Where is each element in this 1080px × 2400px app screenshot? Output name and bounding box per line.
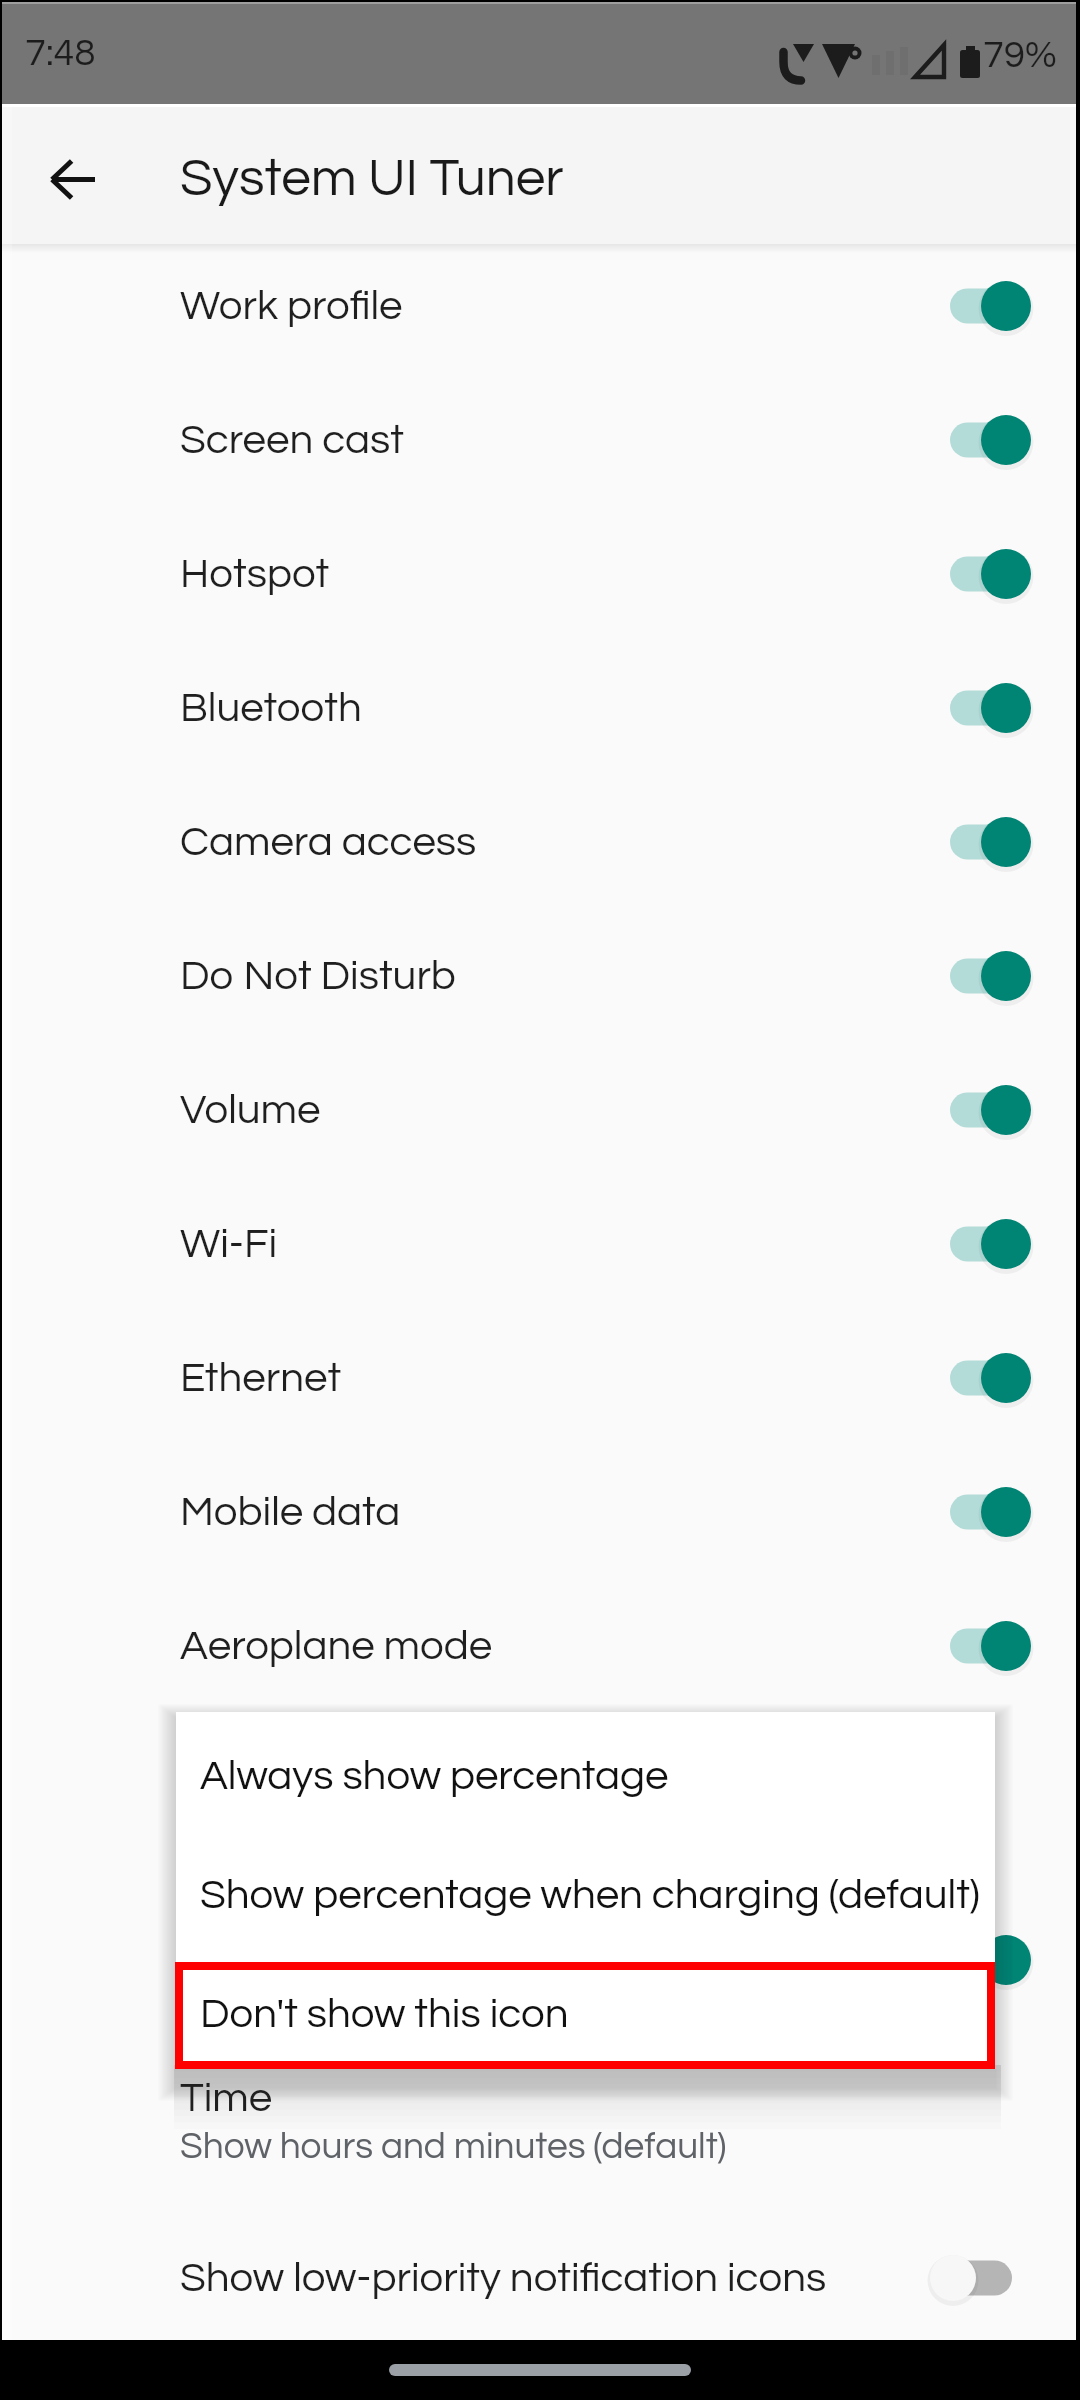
button[interactable]: Toggle Show low-priority notification ic… [946,2250,1034,2306]
button[interactable]: Back [26,133,118,225]
staticText: System UI Tuner [180,152,564,207]
button[interactable]: Screen cast [0,373,1080,507]
button[interactable]: Show low-priority notification icons [0,2211,1080,2345]
button[interactable]: Toggle Do Not Disturb [946,948,1034,1004]
button[interactable]: Time [0,2062,1080,2186]
staticText: Do Not Disturb [180,955,946,998]
staticText: Hotspot [180,553,946,596]
staticText: Wi-Fi [180,1223,946,1266]
staticText: 7:48 [25,34,96,73]
button[interactable]: Toggle Ethernet [946,1350,1034,1406]
staticText: Mobile data [180,1491,946,1534]
button[interactable]: Wi-Fi [0,1177,1080,1311]
staticText: Bluetooth [180,687,946,730]
staticText: 79% [983,36,1057,75]
button[interactable]: Mobile data [0,1445,1080,1579]
button[interactable]: Toggle Battery percentage [946,1932,1034,1988]
button[interactable]: Work profile [0,239,1080,373]
staticText: Don't show this icon [200,1993,569,2036]
button[interactable]: Don't show this icon [176,1950,995,2069]
button[interactable]: Toggle Volume [946,1082,1034,1138]
staticText: Show percentage when charging (default) [200,1874,980,1917]
staticText: Time [180,2077,273,2120]
staticText: Always show percentage [200,1755,669,1798]
button[interactable]: Bluetooth [0,641,1080,775]
button[interactable]: Camera access [0,775,1080,909]
staticText: Camera access [180,821,946,864]
button[interactable]: Toggle Bluetooth [946,680,1034,736]
button[interactable]: Toggle Camera access [946,814,1034,870]
button[interactable]: Aeroplane mode [0,1579,1080,1713]
button[interactable]: Toggle Wi-Fi [946,1216,1034,1272]
button[interactable]: Toggle Mobile data [946,1484,1034,1540]
staticText: Work profile [180,285,946,328]
button[interactable]: Toggle Aeroplane mode [946,1618,1034,1674]
staticText: Show hours and minutes (default) [180,2128,727,2166]
button[interactable]: Battery percentage [0,1893,1080,2027]
staticText: Volume [180,1089,946,1132]
button[interactable]: Toggle Work profile [946,278,1034,334]
staticText: Aeroplane mode [180,1625,946,1668]
button[interactable]: Volume [0,1043,1080,1177]
staticText: Battery percentage [180,1939,946,1982]
button[interactable]: Always show percentage [176,1712,995,1831]
staticText: Show low-priority notification icons [180,2257,946,2300]
button[interactable]: Show percentage when charging (default) [176,1831,995,1950]
button[interactable]: Toggle Hotspot [946,546,1034,602]
button[interactable]: Do Not Disturb [0,909,1080,1043]
button[interactable]: Hotspot [0,507,1080,641]
staticText: Ethernet [180,1357,946,1400]
button[interactable]: Ethernet [0,1311,1080,1445]
button[interactable]: Toggle Screen cast [946,412,1034,468]
staticText: Screen cast [180,419,946,462]
